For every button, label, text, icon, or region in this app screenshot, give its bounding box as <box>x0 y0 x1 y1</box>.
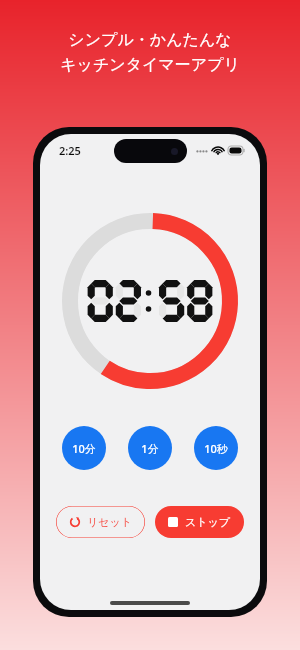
staticText: ストップ <box>185 515 231 529</box>
staticText: 10秒 <box>204 441 228 456</box>
staticText: リセット <box>87 515 133 529</box>
button[interactable]: リセット <box>56 506 145 538</box>
button[interactable]: ストップ <box>155 506 244 538</box>
staticText: キッチンタイマーアプリ <box>60 55 240 75</box>
button[interactable]: 1分 <box>128 426 172 470</box>
staticText: 1分 <box>141 441 159 456</box>
staticText: 2:25 <box>59 143 81 158</box>
button[interactable]: 10分 <box>62 426 106 470</box>
staticText: シンプル・かんたんな <box>68 30 232 50</box>
staticText: 10分 <box>72 441 96 456</box>
button[interactable]: 10秒 <box>194 426 238 470</box>
